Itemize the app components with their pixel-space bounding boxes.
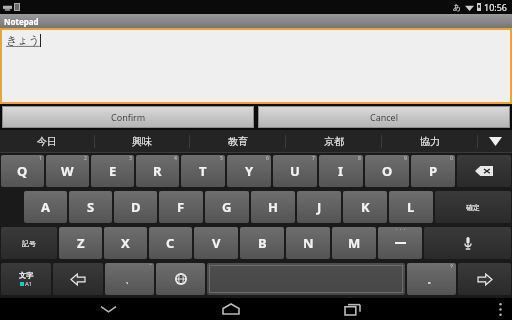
staticText: 8 (358, 155, 361, 162)
button[interactable]: 協力 (382, 130, 477, 153)
button[interactable]: Comma (105, 263, 154, 295)
staticText: Z (77, 234, 85, 252)
staticText: Cancel (370, 111, 399, 123)
button[interactable]: 今日 (0, 130, 94, 153)
staticText: O (382, 162, 393, 180)
button[interactable]: X (104, 227, 147, 259)
staticText: ` (150, 263, 152, 270)
button[interactable]: B (240, 227, 284, 259)
button[interactable]: U (273, 155, 317, 187)
button[interactable]: Voice input (424, 227, 511, 259)
button[interactable]: S (69, 191, 112, 223)
button[interactable]: Left (53, 263, 103, 295)
staticText: きょう (6, 33, 40, 47)
button[interactable]: 京都 (286, 130, 381, 153)
staticText: X (121, 234, 130, 252)
staticText: 、 (125, 273, 135, 286)
staticText: あ (453, 2, 462, 12)
button[interactable]: Right (458, 263, 511, 295)
staticText: W (61, 162, 74, 180)
staticText: H (268, 198, 278, 216)
staticText: 0 (450, 155, 453, 162)
staticText: S (87, 198, 95, 216)
button[interactable]: Confirm (2, 106, 254, 128)
staticText: ・・・ (394, 227, 406, 232)
staticText: 記号 (22, 239, 36, 248)
staticText: N (303, 234, 314, 252)
staticText: U (290, 162, 300, 180)
button[interactable]: O (365, 155, 409, 187)
staticText: 今日 (37, 135, 57, 148)
staticText: M (348, 234, 361, 252)
button[interactable]: K (343, 191, 387, 223)
button[interactable]: 教育 (190, 130, 285, 153)
button[interactable]: Change language (156, 263, 205, 295)
button[interactable]: Backspace (457, 155, 511, 187)
button[interactable]: A (24, 191, 67, 223)
staticText: 協力 (420, 135, 440, 148)
button[interactable]: J (297, 191, 341, 223)
button[interactable]: Z (59, 227, 102, 259)
button[interactable]: G (205, 191, 249, 223)
staticText: 4 (174, 155, 177, 162)
staticText: 6 (266, 155, 269, 162)
button[interactable]: T (181, 155, 225, 187)
staticText: F (177, 198, 185, 216)
staticText: 5 (220, 155, 223, 162)
button[interactable]: L (389, 191, 433, 223)
button[interactable]: V (194, 227, 238, 259)
button[interactable]: 記号 (1, 227, 57, 259)
staticText: R (153, 162, 162, 180)
button[interactable]: Y (227, 155, 271, 187)
button[interactable]: Home (190, 298, 271, 320)
button[interactable]: E (91, 155, 134, 187)
button[interactable]: Space (207, 263, 405, 295)
button[interactable]: Cancel (258, 106, 510, 128)
button[interactable]: P (411, 155, 455, 187)
staticText: L (407, 198, 415, 216)
staticText: 確定 (466, 203, 480, 212)
button[interactable]: Long vowel (378, 227, 422, 259)
staticText: Q (17, 162, 28, 180)
staticText: C (166, 234, 175, 252)
staticText: D (131, 198, 141, 216)
staticText: 9 (404, 155, 407, 162)
staticText: B (258, 234, 267, 252)
button[interactable]: Q (1, 155, 44, 187)
staticText: 3 (129, 155, 132, 162)
staticText: G (222, 198, 232, 216)
button[interactable]: Period (407, 263, 456, 295)
button[interactable]: N (286, 227, 330, 259)
button[interactable]: More candidates (478, 130, 512, 153)
button[interactable]: D (114, 191, 157, 223)
button[interactable]: I (319, 155, 363, 187)
button[interactable]: 興味 (95, 130, 189, 153)
staticText: 2 (84, 155, 87, 162)
button[interactable]: R (136, 155, 179, 187)
button[interactable]: C (149, 227, 192, 259)
staticText: 。 (427, 273, 437, 286)
staticText: 10:56 (484, 1, 508, 13)
button[interactable]: Recents (312, 298, 393, 320)
staticText: 京都 (324, 135, 344, 148)
staticText: I (338, 162, 344, 180)
button[interactable]: 文字 (1, 263, 51, 295)
staticText: 1 (39, 155, 42, 162)
button[interactable]: F (159, 191, 203, 223)
staticText: Confirm (111, 111, 146, 123)
staticText: V (212, 234, 221, 252)
staticText: 7 (312, 155, 315, 162)
staticText: A1 (25, 280, 33, 288)
button[interactable]: 確定 (435, 191, 511, 223)
staticText: J (317, 198, 322, 216)
staticText: 文字 (19, 271, 33, 280)
button[interactable]: W (46, 155, 89, 187)
staticText: A (41, 198, 50, 216)
button[interactable]: M (332, 227, 376, 259)
button[interactable]: More options (488, 298, 512, 320)
staticText: E (109, 162, 117, 180)
button[interactable]: Hide keyboard (68, 298, 149, 320)
button[interactable]: H (251, 191, 295, 223)
staticText: P (429, 162, 438, 180)
staticText: Notepad (4, 16, 39, 27)
